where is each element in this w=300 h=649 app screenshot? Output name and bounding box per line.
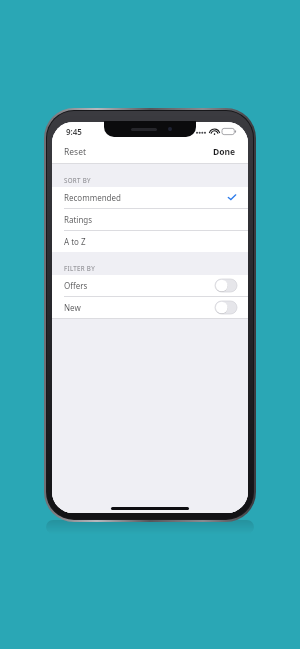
button[interactable]: Offers <box>52 275 248 296</box>
staticText: Reset <box>64 146 87 158</box>
staticText: A to Z <box>64 236 86 247</box>
staticText: 9:45 <box>66 126 82 137</box>
staticText: Ratings <box>64 214 93 225</box>
button[interactable]: A to Z <box>52 231 248 252</box>
staticText: Offers <box>64 280 88 291</box>
button[interactable]: Ratings <box>52 209 248 230</box>
button[interactable]: Reset <box>52 143 95 161</box>
button[interactable]: New <box>52 297 248 318</box>
button[interactable]: Offers toggle, off <box>215 279 237 292</box>
staticText: New <box>64 302 81 313</box>
staticText: FILTER BY <box>64 264 95 272</box>
staticText: Recommended <box>64 192 121 203</box>
button[interactable]: Done <box>205 143 248 161</box>
staticText: SORT BY <box>64 176 91 184</box>
staticText: Done <box>213 146 236 158</box>
button[interactable]: New toggle, off <box>215 301 237 314</box>
button[interactable]: Recommended <box>52 187 248 208</box>
